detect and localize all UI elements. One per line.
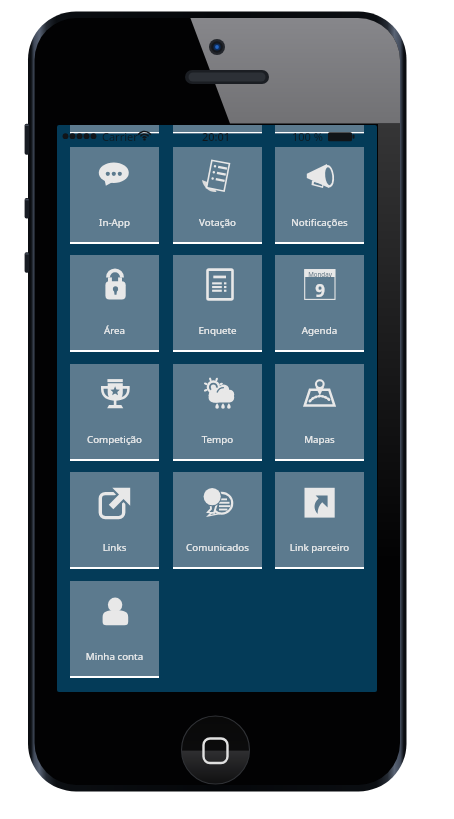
staticText: Monday [308,270,332,278]
staticText: Mapas [275,433,364,446]
button[interactable]: Link parceiro [275,472,364,569]
staticText: Competição [70,433,159,446]
staticText: Agenda [275,324,364,337]
button[interactable]: Notificações [275,147,364,244]
button[interactable]: Links [70,472,159,569]
staticText: Notificações [275,216,364,229]
staticText: In-App [70,216,159,229]
button[interactable]: In-App [70,147,159,244]
staticText: 20:01 [202,129,231,144]
staticText: Área [70,324,159,337]
button[interactable]: Minha conta [70,581,159,678]
button[interactable]: Mapas [275,364,364,461]
staticText: Minha conta [70,650,159,663]
button[interactable]: Tempo [173,364,262,461]
staticText: Carrier [102,129,138,144]
button[interactable]: Comunicados [173,472,262,569]
button[interactable]: Monday [275,255,364,352]
button[interactable]: Votação [173,147,262,244]
staticText: 100 % [292,129,323,144]
staticText: Link parceiro [275,541,364,554]
staticText: 9 [315,279,325,302]
button[interactable] [70,125,159,134]
button[interactable]: Área [70,255,159,352]
staticText: Links [70,541,159,554]
button[interactable] [173,125,262,134]
button[interactable] [275,125,364,134]
staticText: Comunicados [173,541,262,554]
button[interactable]: Enquete [173,255,262,352]
staticText: Tempo [173,433,262,446]
staticText: Votação [173,216,262,229]
staticText: Enquete [173,324,262,337]
button[interactable]: Competição [70,364,159,461]
